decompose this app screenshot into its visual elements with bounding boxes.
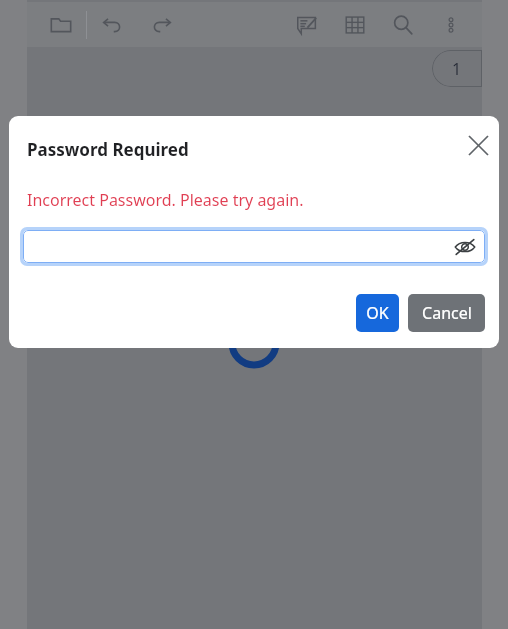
button[interactable]: Annotate: [288, 6, 326, 44]
button[interactable]: Undo: [93, 6, 131, 44]
staticText: Incorrect Password. Please try again.: [27, 189, 304, 211]
button[interactable]: More options: [432, 6, 470, 44]
button[interactable]: Cancel: [408, 294, 485, 332]
button[interactable]: Close: [461, 128, 495, 162]
button[interactable]: Search: [384, 6, 422, 44]
button[interactable]: Redo: [143, 6, 181, 44]
staticText: 1: [452, 58, 462, 80]
button[interactable]: Show password: [451, 233, 479, 261]
button[interactable]: Show password: [23, 230, 485, 263]
button[interactable]: Open folder: [42, 6, 80, 44]
staticText: OK: [366, 302, 389, 324]
button[interactable]: OK: [356, 294, 399, 332]
button[interactable]: Table: [336, 6, 374, 44]
staticText: Password Required: [27, 138, 189, 161]
staticText: Cancel: [422, 302, 472, 324]
